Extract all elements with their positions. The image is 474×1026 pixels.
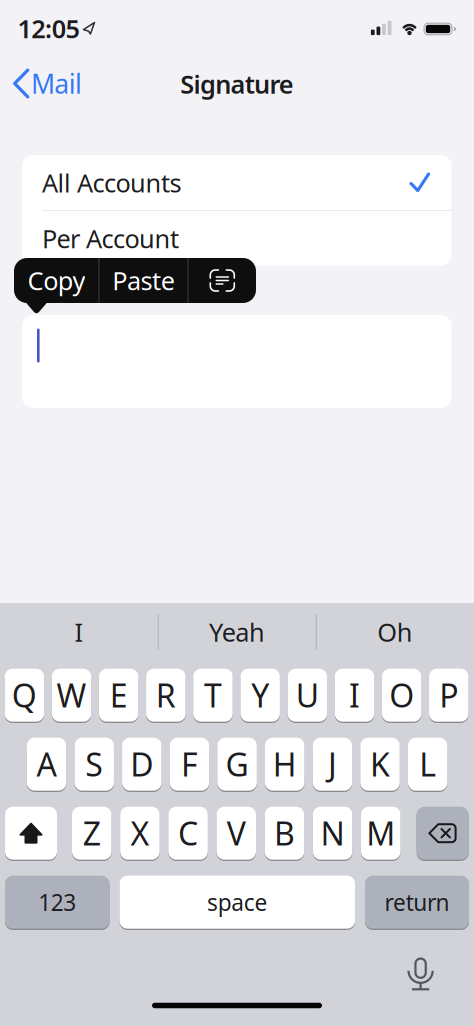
button[interactable]: return <box>365 875 469 930</box>
button[interactable]: Q <box>5 668 44 723</box>
staticText: T <box>204 674 222 716</box>
button[interactable]: K <box>360 737 400 792</box>
button[interactable]: 123 <box>5 875 109 930</box>
staticText: V <box>227 812 246 854</box>
button[interactable]: space <box>119 875 355 930</box>
staticText: P <box>439 674 458 716</box>
button[interactable]: G <box>217 737 257 792</box>
button[interactable]: O <box>382 668 421 723</box>
button[interactable]: U <box>288 668 327 723</box>
button[interactable]: Dictation <box>399 951 443 995</box>
button[interactable]: Scan Text <box>189 258 256 303</box>
staticText: space <box>207 887 267 917</box>
button[interactable]: F <box>170 737 209 792</box>
button[interactable]: Paste <box>99 258 187 303</box>
button[interactable]: I <box>4 608 154 656</box>
staticText: L <box>419 743 436 785</box>
staticText: F <box>181 743 198 785</box>
staticText: E <box>110 674 128 716</box>
staticText: return <box>384 887 449 917</box>
staticText: Oh <box>377 615 413 649</box>
button[interactable]: E <box>99 668 138 723</box>
button[interactable]: D <box>122 737 162 792</box>
staticText: Y <box>251 674 269 716</box>
staticText: Z <box>83 812 101 854</box>
button[interactable]: R <box>146 668 186 723</box>
staticText: I <box>349 674 360 716</box>
button[interactable]: Yeah <box>162 608 312 656</box>
button[interactable]: H <box>265 737 304 792</box>
staticText: A <box>36 743 56 785</box>
button[interactable]: Oh <box>320 608 470 656</box>
staticText: U <box>296 674 319 716</box>
staticText: I <box>74 615 83 649</box>
button[interactable]: All Accounts <box>22 155 452 210</box>
staticText: 123 <box>38 887 76 917</box>
staticText: Q <box>12 674 37 716</box>
staticText: J <box>328 743 337 785</box>
button[interactable]: Y <box>240 668 280 723</box>
button[interactable]: X <box>120 806 160 861</box>
button[interactable]: Delete <box>417 806 469 861</box>
button[interactable]: Copy <box>14 258 98 303</box>
staticText: D <box>130 743 153 785</box>
button[interactable]: Back <box>6 62 96 105</box>
button[interactable]: V <box>216 806 256 861</box>
staticText: N <box>321 812 345 854</box>
staticText: 12:05 <box>18 12 79 45</box>
staticText: R <box>156 674 176 716</box>
staticText: O <box>389 674 414 716</box>
staticText: Signature <box>180 67 294 101</box>
button[interactable]: L <box>408 737 447 792</box>
staticText: B <box>274 812 295 854</box>
button[interactable]: C <box>168 806 208 861</box>
button[interactable]: Z <box>72 806 111 861</box>
button[interactable]: I <box>335 668 374 723</box>
staticText: G <box>226 743 249 785</box>
staticText: M <box>366 812 395 854</box>
staticText: Copy <box>28 264 85 297</box>
button[interactable]: S <box>74 737 114 792</box>
staticText: All Accounts <box>42 166 182 199</box>
button[interactable]: Per Account <box>22 211 452 266</box>
button[interactable]: J <box>313 737 352 792</box>
button[interactable]: T <box>193 668 233 723</box>
button[interactable]: B <box>265 806 304 861</box>
button[interactable]: M <box>361 806 400 861</box>
button[interactable]: A <box>27 737 66 792</box>
button[interactable]: P <box>429 668 468 723</box>
staticText: H <box>273 743 297 785</box>
staticText: C <box>178 812 198 854</box>
staticText: Per Account <box>42 221 179 255</box>
staticText: K <box>370 743 390 785</box>
staticText: Mail <box>31 66 82 101</box>
staticText: S <box>85 743 103 785</box>
staticText: Paste <box>112 264 175 297</box>
staticText: Yeah <box>209 615 265 649</box>
button[interactable]: N <box>313 806 352 861</box>
staticText: W <box>56 674 86 716</box>
button[interactable]: Shift <box>5 806 57 861</box>
staticText: X <box>130 812 149 854</box>
button[interactable]: W <box>52 668 91 723</box>
